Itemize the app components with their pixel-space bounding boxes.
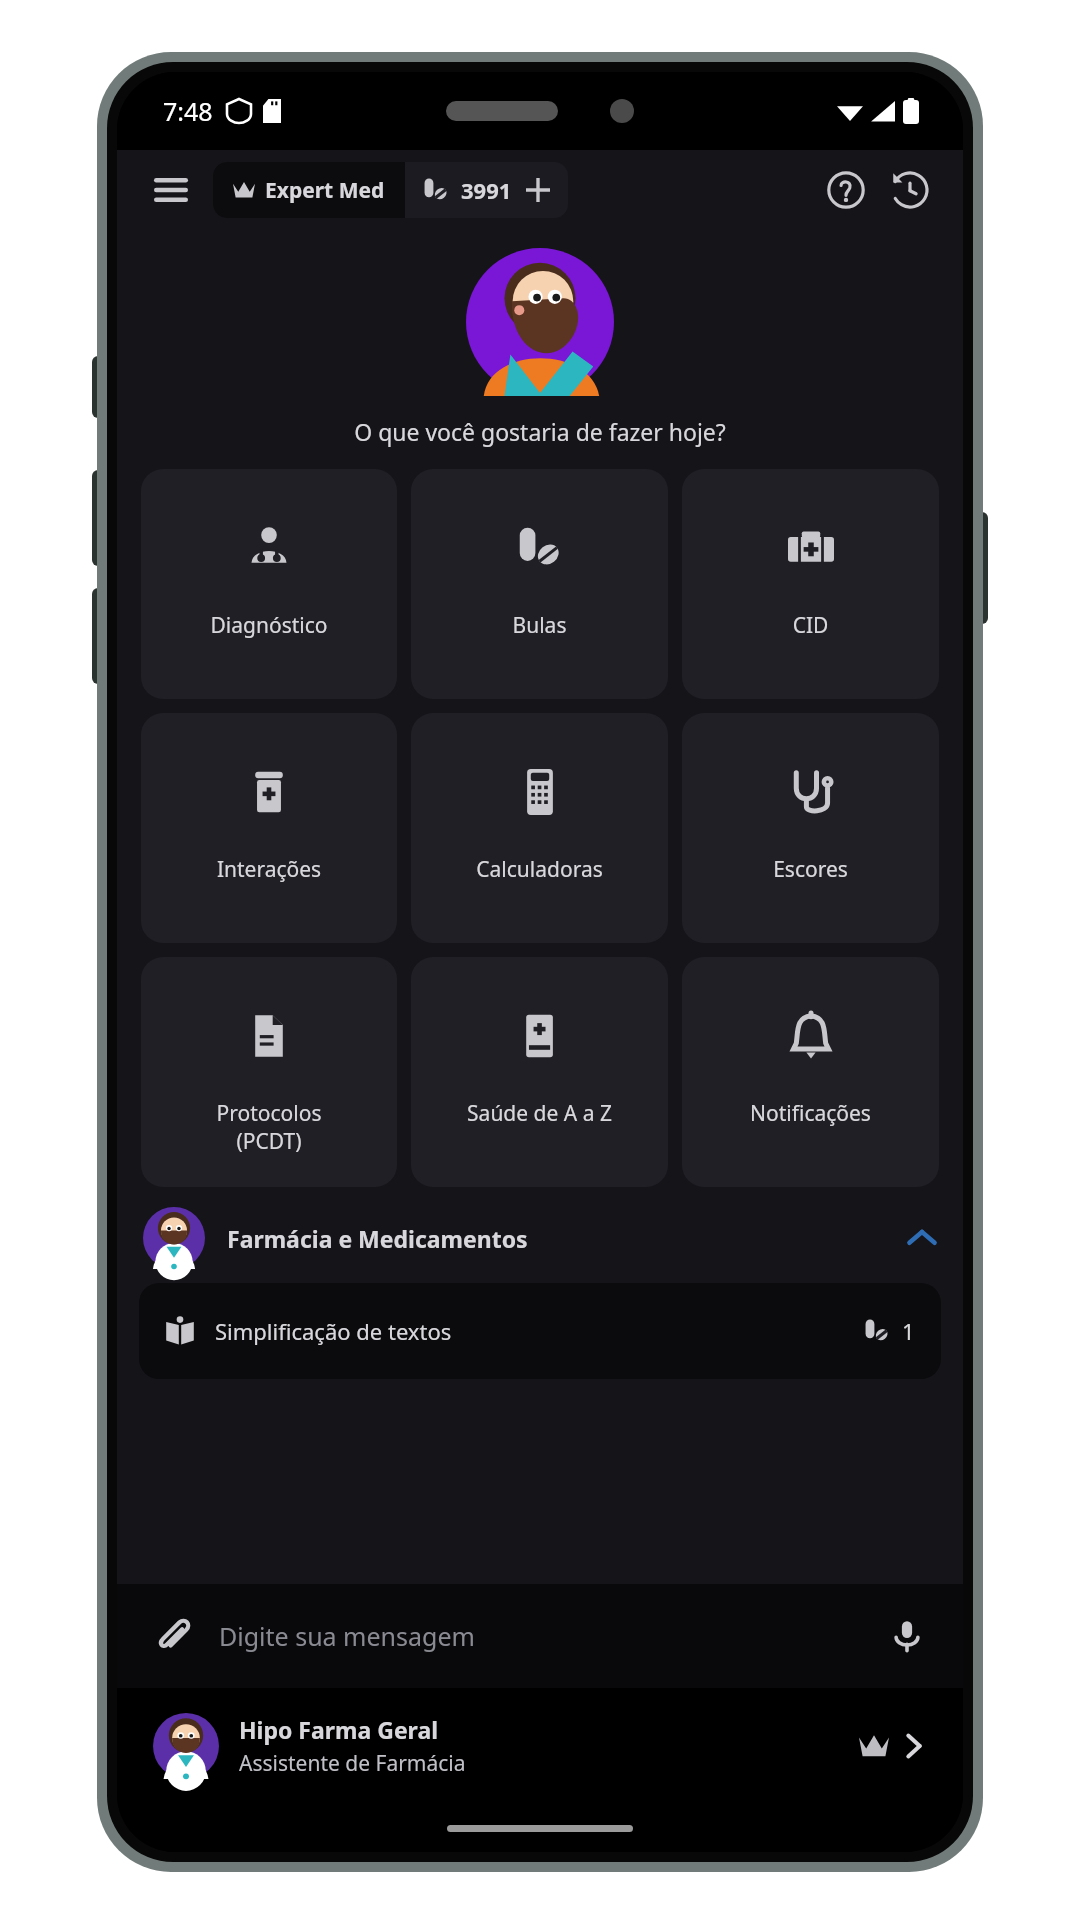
staticText: Hipo Farma Geral xyxy=(239,1714,439,1745)
button[interactable]: Ajuda xyxy=(819,163,873,217)
button[interactable]: Farmácia e Medicamentos xyxy=(143,1203,937,1273)
other: Microfone xyxy=(891,1620,923,1652)
button[interactable]: Histórico xyxy=(883,163,937,217)
staticText: 7:48 xyxy=(163,94,213,128)
staticText: Farmácia e Medicamentos xyxy=(227,1223,528,1254)
button[interactable]: Anexar xyxy=(157,1584,923,1688)
staticText: 1 xyxy=(902,1316,915,1346)
button[interactable]: CID xyxy=(682,469,939,699)
button[interactable]: Saúde de A a Z xyxy=(411,957,668,1187)
staticText: Escores xyxy=(682,855,939,884)
button[interactable]: Menu xyxy=(143,162,199,218)
button[interactable]: Diagnóstico xyxy=(141,469,397,699)
staticText: Diagnóstico xyxy=(141,611,397,640)
staticText: CID xyxy=(682,611,939,640)
button[interactable]: Notificações xyxy=(682,957,939,1187)
staticText: Digite sua mensagem xyxy=(219,1619,475,1653)
button[interactable]: Interações xyxy=(141,713,397,943)
button[interactable]: 3991 xyxy=(423,162,550,218)
staticText: Simplificação de textos xyxy=(215,1316,452,1346)
button[interactable]: Hipo Farma Geral xyxy=(153,1688,927,1804)
button[interactable]: Bulas xyxy=(411,469,668,699)
staticText: Assistente de Farmácia xyxy=(239,1749,466,1778)
staticText: Calculadoras xyxy=(411,855,668,884)
staticText: 3991 xyxy=(461,175,512,205)
button[interactable]: Simplificação de textos xyxy=(165,1283,915,1379)
staticText: Expert Med xyxy=(265,176,385,205)
staticText: Notificações xyxy=(682,1099,939,1128)
staticText: Bulas xyxy=(411,611,668,640)
other: Anexar xyxy=(157,1619,191,1653)
staticText: O que você gostaria de fazer hoje? xyxy=(117,416,963,447)
button[interactable]: Protocolos (PCDT) xyxy=(141,957,397,1187)
staticText: Interações xyxy=(141,855,397,884)
staticText: Protocolos (PCDT) xyxy=(141,1099,397,1155)
button[interactable]: Calculadoras xyxy=(411,713,668,943)
staticText: Saúde de A a Z xyxy=(411,1099,668,1128)
button[interactable]: Escores xyxy=(682,713,939,943)
button[interactable]: Expert Med xyxy=(233,162,385,218)
